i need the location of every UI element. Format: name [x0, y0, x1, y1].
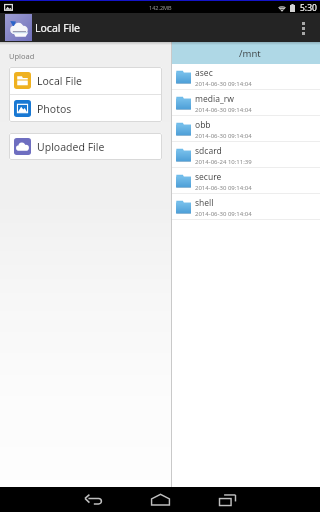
staticText: sdcard: [195, 145, 222, 157]
staticText: Uploaded File: [37, 140, 105, 154]
staticText: 2014-06-30 09:14:04: [195, 106, 252, 114]
staticText: shell: [195, 197, 214, 209]
staticText: Upload: [9, 51, 35, 61]
staticText: 2014-06-30 09:14:04: [195, 210, 252, 218]
staticText: 2014-06-24 10:11:39: [195, 158, 252, 166]
button[interactable]: Back: [60, 487, 127, 512]
button[interactable]: secure: [172, 168, 320, 193]
button[interactable]: shell: [172, 194, 320, 219]
button[interactable]: obb: [172, 116, 320, 141]
button[interactable]: Uploaded File: [9, 133, 162, 160]
button[interactable]: sdcard: [172, 142, 320, 167]
button[interactable]: Photos: [9, 95, 162, 122]
staticText: obb: [195, 119, 211, 131]
button[interactable]: Local File: [9, 67, 162, 94]
staticText: 2014-06-30 09:14:04: [195, 132, 252, 140]
staticText: media_rw: [195, 93, 234, 105]
button[interactable]: Recents: [194, 487, 261, 512]
staticText: 2014-06-30 09:14:04: [195, 80, 252, 88]
staticText: secure: [195, 171, 222, 183]
button[interactable]: Home: [127, 487, 194, 512]
button[interactable]: More options: [286, 13, 320, 42]
staticText: Photos: [37, 102, 72, 116]
button[interactable]: media_rw: [172, 90, 320, 115]
staticText: asec: [195, 67, 213, 79]
button[interactable]: asec: [172, 64, 320, 89]
staticText: 2014-06-30 09:14:04: [195, 184, 252, 192]
staticText: Local File: [37, 74, 83, 88]
staticText: Local File: [35, 21, 81, 35]
staticText: /mnt: [239, 47, 261, 60]
staticText: 5:30: [300, 2, 317, 14]
staticText: 142.2MB: [149, 4, 172, 11]
